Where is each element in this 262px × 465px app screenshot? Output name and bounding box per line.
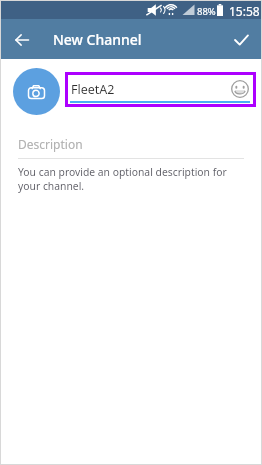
button[interactable]: Done (228, 26, 255, 53)
staticText: 88% (197, 5, 216, 18)
button[interactable]: Back (8, 26, 35, 53)
staticText: Description (18, 136, 83, 152)
staticText: New Channel (53, 30, 142, 49)
button[interactable]: Emoji (231, 80, 249, 98)
button[interactable]: Set channel photo (13, 68, 60, 115)
staticText: You can provide an optional description … (18, 165, 236, 193)
staticText: FleetA2 (71, 81, 115, 98)
staticText: 15:58 (229, 3, 260, 19)
